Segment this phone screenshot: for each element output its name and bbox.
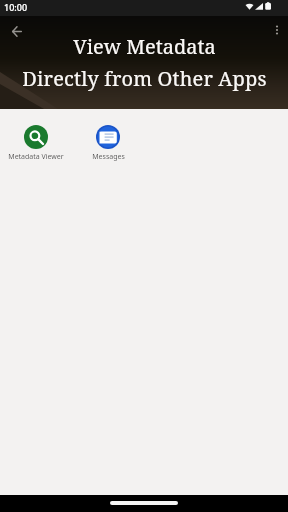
button[interactable] [270, 20, 284, 42]
staticText: Metadata Viewer [8, 152, 64, 162]
button[interactable] [4, 20, 30, 42]
staticText: Messages [92, 152, 125, 162]
staticText: View Metadata [73, 33, 216, 60]
button[interactable]: Metadata Viewer [0, 125, 72, 162]
staticText: Directly from Other Apps [22, 65, 267, 92]
button[interactable]: Messages [72, 125, 144, 162]
staticText: 10:00 [4, 1, 28, 13]
